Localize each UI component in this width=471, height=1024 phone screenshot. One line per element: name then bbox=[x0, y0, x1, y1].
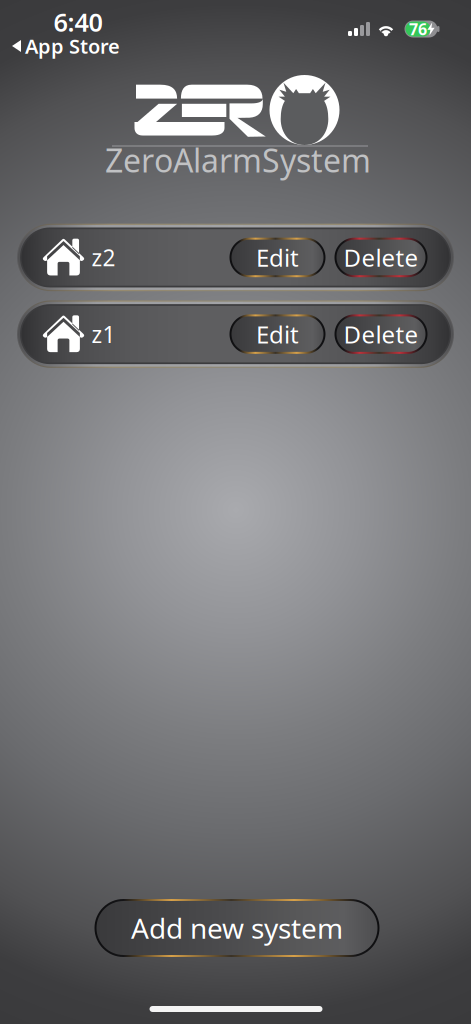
staticText: z2 bbox=[91, 242, 115, 272]
button[interactable]: App Store bbox=[12, 35, 152, 57]
button[interactable]: Edit bbox=[229, 238, 325, 277]
staticText: Delete bbox=[343, 241, 418, 273]
button[interactable]: z1 bbox=[0, 300, 471, 368]
staticText: Delete bbox=[343, 318, 418, 350]
staticText: 76 bbox=[409, 18, 427, 40]
staticText: Edit bbox=[256, 241, 299, 273]
staticText: Add new system bbox=[131, 909, 343, 947]
staticText: 6:40 bbox=[53, 5, 102, 39]
button[interactable]: Delete bbox=[334, 314, 427, 354]
button[interactable]: Add new system bbox=[94, 899, 379, 957]
button[interactable]: z2 bbox=[0, 224, 471, 291]
staticText: App Store bbox=[25, 33, 120, 59]
staticText: ZeroAlarmSystem bbox=[105, 139, 371, 181]
staticText: Edit bbox=[256, 318, 299, 350]
button[interactable]: Edit bbox=[229, 314, 325, 354]
button[interactable]: Delete bbox=[334, 238, 427, 277]
staticText: z1 bbox=[91, 319, 115, 349]
